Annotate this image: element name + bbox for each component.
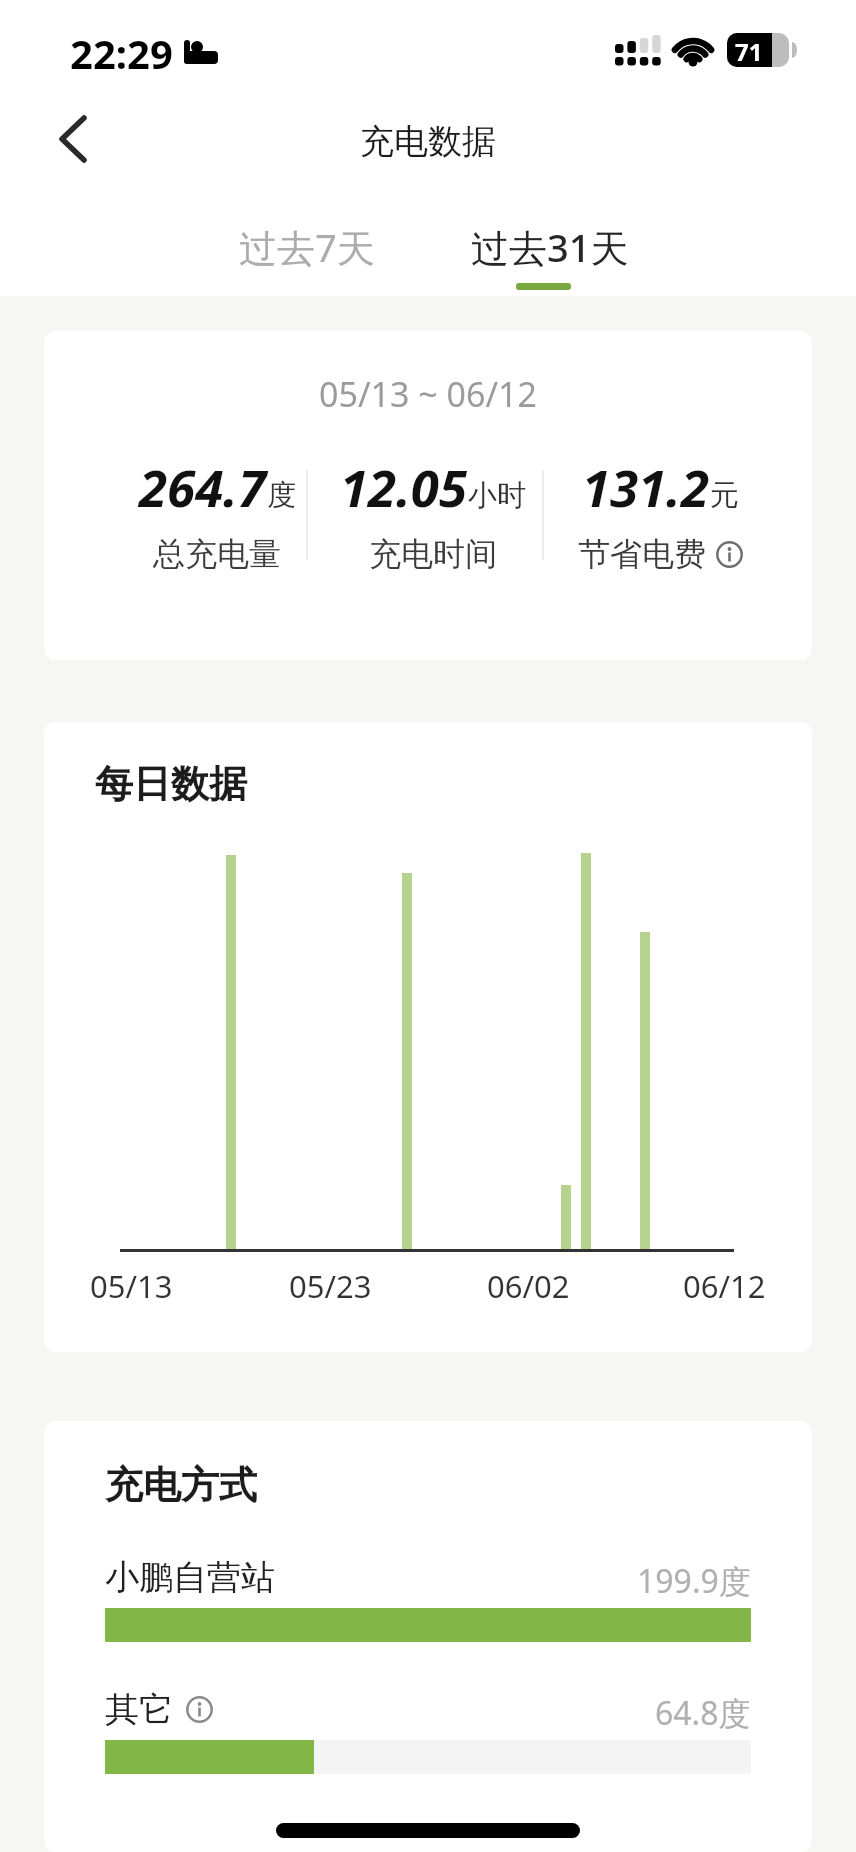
staticText: 64.8度	[655, 1691, 751, 1735]
staticText: 过去7天	[239, 221, 375, 273]
staticText: 小鹏自营站	[105, 1556, 275, 1599]
button[interactable]: 节省电费	[510, 534, 810, 574]
staticText: 05/13 ~ 06/12	[319, 371, 538, 417]
staticText: 总充电量	[153, 534, 281, 574]
button[interactable]: 充电时间	[283, 534, 583, 574]
staticText: 每日数据	[95, 760, 247, 808]
button[interactable]: 其它	[105, 1688, 213, 1731]
staticText: 131.2	[582, 452, 710, 521]
button[interactable]: 过去7天	[217, 218, 397, 276]
staticText: 264.7	[139, 452, 267, 521]
staticText: 71	[735, 35, 763, 67]
staticText: 过去31天	[471, 221, 629, 273]
staticText: 199.9度	[637, 1559, 751, 1603]
staticText: 充电数据	[360, 120, 496, 163]
staticText: 12.05	[340, 452, 468, 521]
staticText: 节省电费	[578, 534, 706, 574]
staticText: 06/02	[487, 1265, 570, 1307]
staticText: 元	[710, 477, 739, 514]
staticText: 05/13	[90, 1265, 173, 1307]
button[interactable]: 过去31天	[462, 218, 637, 276]
staticText: 其它	[105, 1688, 173, 1731]
staticText: 充电时间	[369, 534, 497, 574]
staticText: 05/23	[289, 1265, 372, 1307]
staticText: 度	[267, 477, 296, 514]
button[interactable]: 22:29	[50, 18, 250, 82]
button[interactable]	[44, 110, 104, 170]
button[interactable]: 总充电量	[67, 534, 367, 574]
staticText: 06/12	[683, 1265, 766, 1307]
staticText: 充电方式	[105, 1461, 257, 1509]
staticText: 22:29	[70, 26, 173, 80]
staticText: 小时	[468, 477, 526, 514]
